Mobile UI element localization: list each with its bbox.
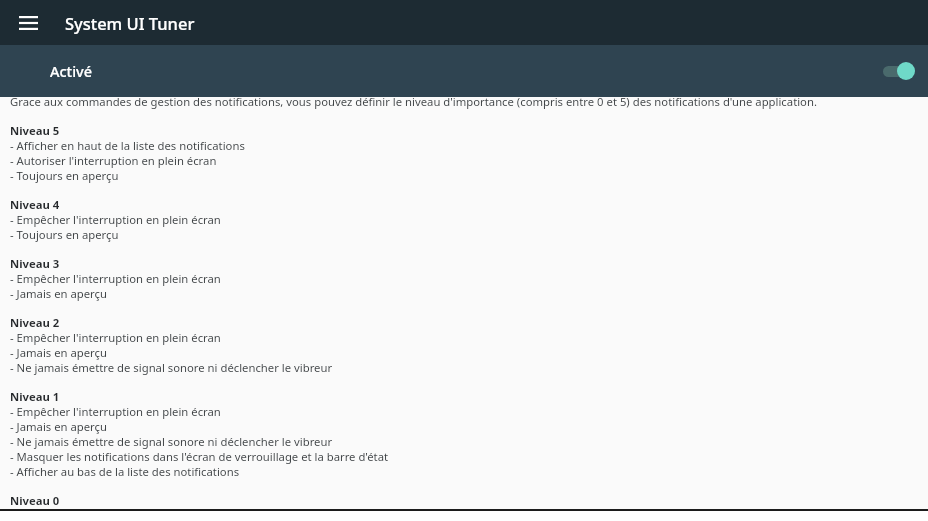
staticText: Niveau 4	[10, 197, 60, 212]
button[interactable]: Open navigation menu	[4, 0, 52, 45]
staticText: Grace aux commandes de gestion des notif…	[10, 97, 817, 109]
staticText: - Empêcher l'interruption en plein écran	[10, 330, 221, 345]
staticText: - Jamais en aperçu	[10, 345, 107, 360]
staticText: Niveau 2	[10, 315, 60, 330]
staticText: - Ne jamais émettre de signal sonore ni …	[10, 360, 333, 375]
staticText: - Empêcher l'interruption en plein écran	[10, 271, 221, 286]
staticText: System UI Tuner	[65, 12, 195, 34]
staticText: - Ne jamais émettre de signal sonore ni …	[10, 434, 333, 449]
staticText: Niveau 5	[10, 123, 60, 138]
staticText: - Autoriser l'interruption en plein écra…	[10, 153, 217, 168]
button[interactable]: Activé toggle, on	[870, 51, 926, 91]
staticText: Activé	[50, 61, 93, 81]
staticText: - Masquer les notifications dans l'écran…	[10, 449, 389, 464]
staticText: - Afficher au bas de la liste des notifi…	[10, 464, 240, 479]
staticText: - Toujours en aperçu	[10, 168, 119, 183]
staticText: - Afficher en haut de la liste des notif…	[10, 138, 245, 153]
button[interactable]: Activé	[0, 45, 928, 97]
staticText: - Empêcher l'interruption en plein écran	[10, 212, 221, 227]
staticText: - Jamais en aperçu	[10, 286, 107, 301]
staticText: - Jamais en aperçu	[10, 419, 107, 434]
staticText: Niveau 0	[10, 493, 60, 506]
staticText: - Toujours en aperçu	[10, 227, 119, 242]
staticText: Niveau 1	[10, 389, 60, 404]
staticText: Niveau 3	[10, 256, 60, 271]
staticText: - Empêcher l'interruption en plein écran	[10, 404, 221, 419]
